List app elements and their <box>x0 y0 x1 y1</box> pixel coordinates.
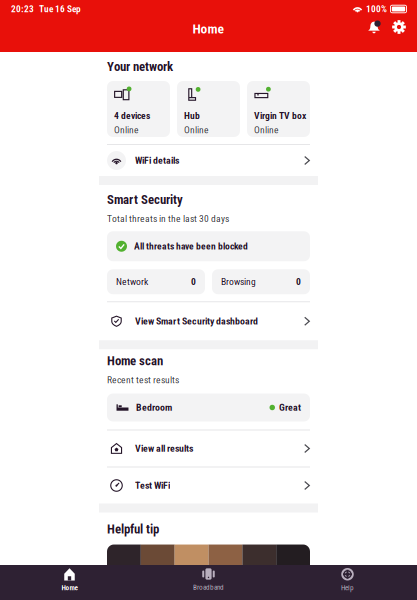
staticText: Virgin TV box <box>254 110 306 121</box>
staticText: All threats have been blocked <box>134 241 248 252</box>
staticText: View all results <box>135 443 193 454</box>
staticText: Online <box>114 124 139 136</box>
staticText: Online <box>184 124 209 136</box>
staticText: 0 <box>191 276 196 287</box>
staticText: Your network <box>107 59 173 74</box>
staticText: Browsing <box>221 276 256 287</box>
staticText: Home <box>61 583 77 592</box>
staticText: Home <box>192 21 224 37</box>
button[interactable]: View all results <box>107 430 310 466</box>
button[interactable]: Test WiFi <box>107 467 310 503</box>
staticText: Bedroom <box>136 402 172 413</box>
staticText: 20:23 <box>11 3 34 14</box>
staticText: Recent test results <box>107 374 179 386</box>
staticText: Online <box>254 124 279 136</box>
button[interactable]: Home <box>0 565 139 600</box>
staticText: Test WiFi <box>135 480 170 491</box>
button[interactable]: Notifications <box>367 20 381 34</box>
staticText: 0 <box>296 276 301 287</box>
button[interactable]: Help <box>278 565 417 600</box>
staticText: Help <box>341 583 354 592</box>
staticText: Total threats in the last 30 days <box>107 213 229 224</box>
staticText: Great <box>279 402 301 413</box>
staticText: 4 devices <box>114 110 150 121</box>
staticText: Home scan <box>107 353 163 368</box>
staticText: Hub <box>184 110 200 121</box>
staticText: Broadband <box>193 583 224 591</box>
button[interactable]: WiFi details <box>107 145 310 176</box>
button[interactable]: View Smart Security dashboard <box>107 302 310 340</box>
staticText: Tue 16 Sep <box>39 3 81 14</box>
staticText: View Smart Security dashboard <box>135 315 258 327</box>
staticText: Smart Security <box>107 192 183 207</box>
button[interactable]: Broadband <box>139 565 278 600</box>
button[interactable]: Settings <box>392 20 406 34</box>
staticText: Helpful tip <box>107 521 159 536</box>
staticText: WiFi details <box>135 155 179 166</box>
staticText: 100% <box>366 3 387 14</box>
staticText: Network <box>116 276 148 287</box>
button[interactable]: Bedroom <box>107 393 310 421</box>
